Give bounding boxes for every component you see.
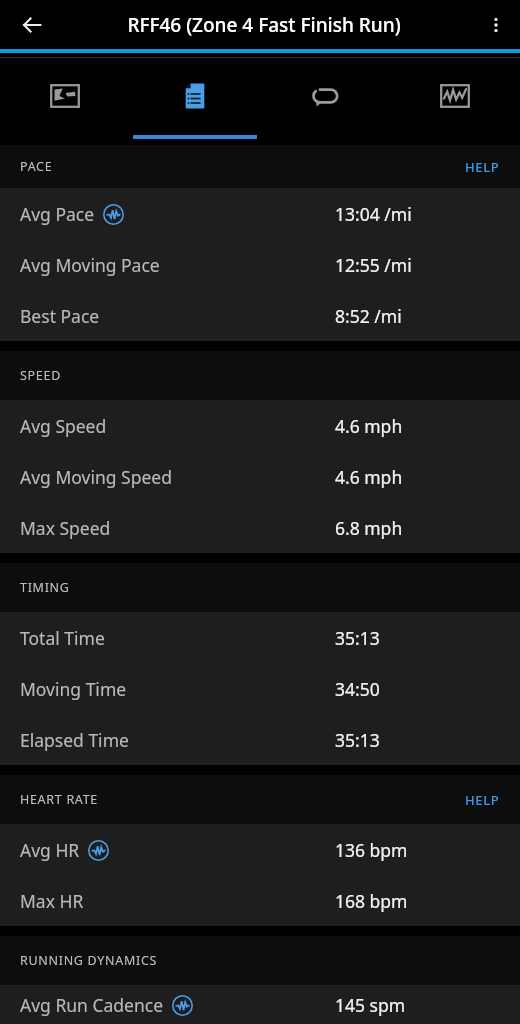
button[interactable]: Avg Moving Pace: [0, 239, 520, 290]
button[interactable]: Max HR: [0, 875, 520, 926]
button[interactable]: Avg Pace: [0, 188, 520, 239]
staticText: Max Speed: [20, 516, 111, 540]
staticText: Avg Speed: [20, 414, 107, 438]
button[interactable]: Avg Moving Speed: [0, 451, 520, 502]
staticText: Best Pace: [20, 304, 100, 328]
button[interactable]: Avg HR: [0, 824, 520, 875]
staticText: 4.6 mph: [335, 465, 403, 489]
button[interactable]: Best Pace: [0, 290, 520, 341]
staticText: HELP: [465, 791, 500, 809]
staticText: Avg Run Cadence: [20, 993, 164, 1017]
staticText: 13:04 /mi: [335, 202, 412, 226]
button[interactable]: Max Speed: [0, 502, 520, 553]
staticText: Max HR: [20, 889, 84, 913]
staticText: HEART RATE: [20, 791, 98, 808]
staticText: TIMING: [20, 579, 70, 596]
button[interactable]: Avg Speed: [0, 400, 520, 451]
button[interactable]: Total Time: [0, 612, 520, 663]
staticText: 168 bpm: [335, 889, 408, 913]
staticText: 136 bpm: [335, 838, 408, 862]
staticText: Avg Moving Pace: [20, 253, 160, 277]
button[interactable]: Moving Time: [0, 663, 520, 714]
staticText: Moving Time: [20, 677, 127, 701]
button[interactable]: Map: [0, 58, 130, 134]
staticText: HELP: [465, 158, 500, 176]
button[interactable]: Details: [130, 58, 260, 134]
button[interactable]: More options: [472, 1, 520, 49]
button[interactable]: Laps: [260, 58, 390, 134]
staticText: Total Time: [20, 626, 105, 650]
staticText: 8:52 /mi: [335, 304, 402, 328]
staticText: Avg HR: [20, 838, 80, 862]
staticText: Avg Moving Speed: [20, 465, 172, 489]
button[interactable]: Elapsed Time: [0, 714, 520, 765]
staticText: Elapsed Time: [20, 728, 129, 752]
staticText: 145 spm: [335, 993, 406, 1017]
staticText: SPEED: [20, 367, 61, 384]
staticText: Avg Pace: [20, 202, 95, 226]
staticText: 4.6 mph: [335, 414, 403, 438]
button[interactable]: Avg Run Cadence: [0, 985, 520, 1024]
button[interactable]: Charts: [390, 58, 520, 134]
staticText: 12:55 /mi: [335, 253, 412, 277]
staticText: RFF46 (Zone 4 Fast Finish Run): [56, 12, 472, 38]
staticText: RUNNING DYNAMICS: [20, 952, 158, 969]
staticText: 35:13: [335, 626, 380, 650]
button[interactable]: HELP: [445, 783, 520, 817]
button[interactable]: HELP: [445, 150, 520, 184]
staticText: 34:50: [335, 677, 380, 701]
staticText: 6.8 mph: [335, 516, 403, 540]
staticText: 35:13: [335, 728, 380, 752]
button[interactable]: Navigate up: [8, 1, 56, 49]
staticText: PACE: [20, 158, 53, 175]
